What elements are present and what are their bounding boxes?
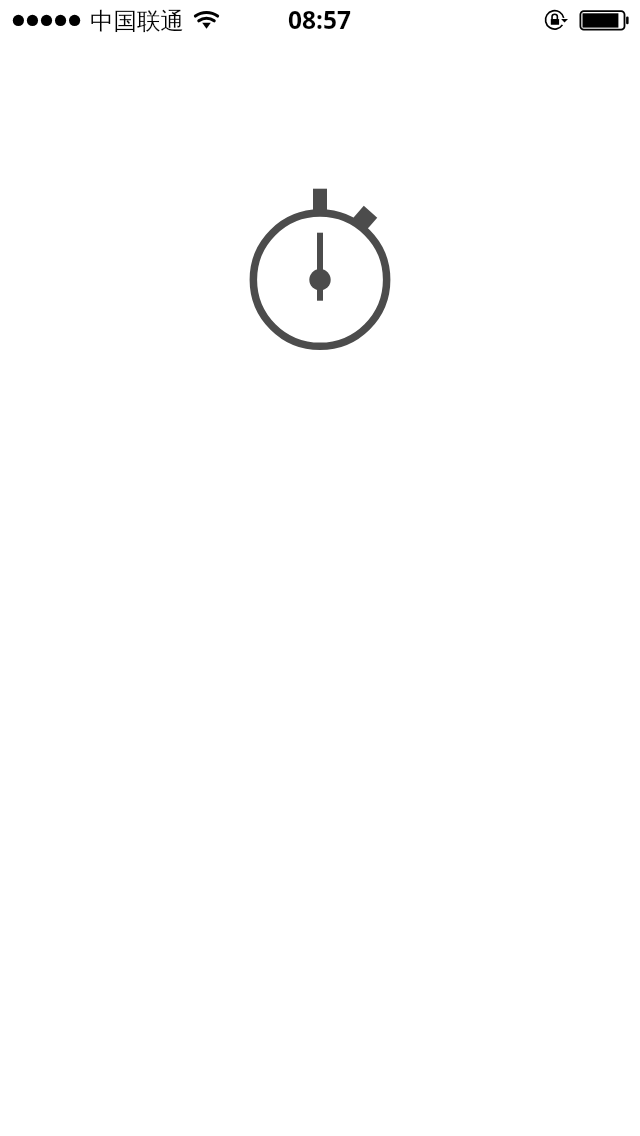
staticText: 中国联通 [90, 6, 184, 36]
button[interactable]: Stopwatch [240, 180, 400, 360]
staticText: 08:57 [288, 3, 351, 36]
